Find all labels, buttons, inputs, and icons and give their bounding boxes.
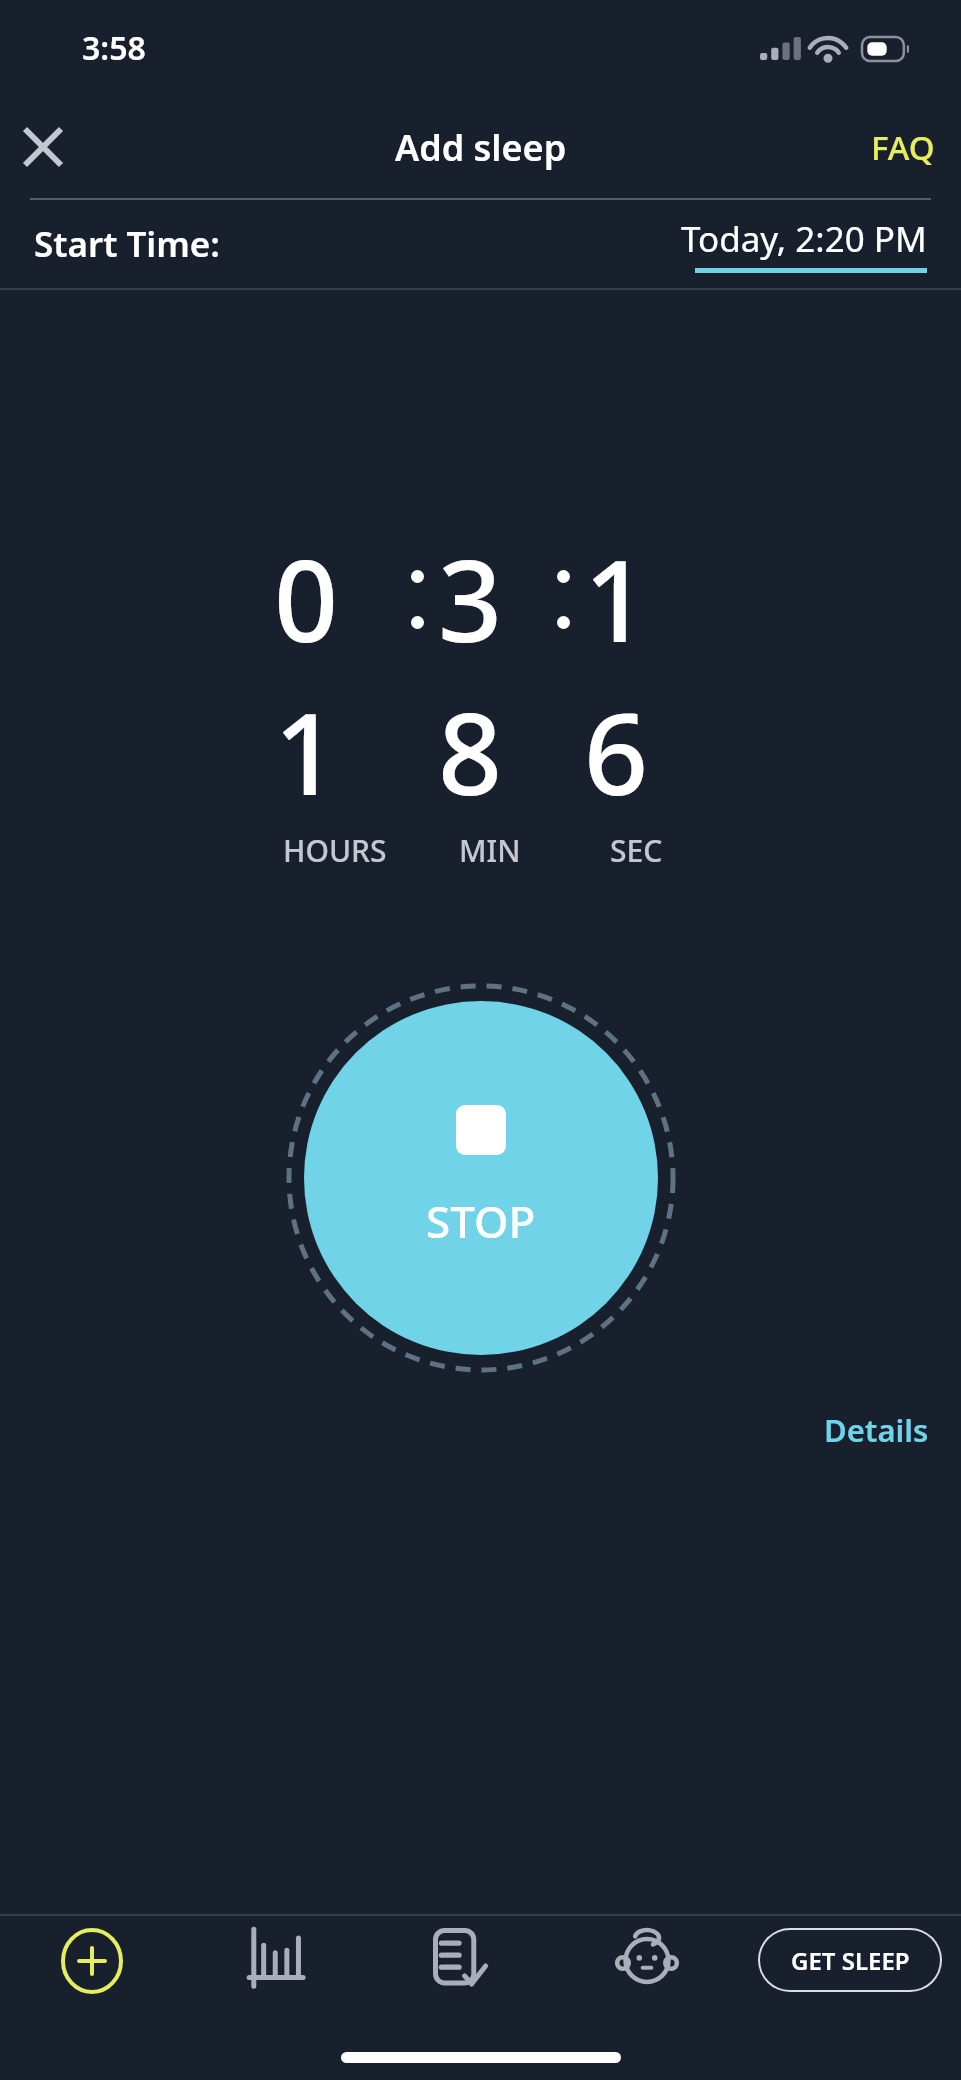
staticText: MIN <box>459 830 521 871</box>
staticText: STOP <box>426 1191 536 1251</box>
staticText: 3:58 <box>82 26 146 70</box>
staticText: SEC <box>610 830 663 871</box>
button[interactable]: STOP <box>304 1001 658 1355</box>
staticText: Start Time: <box>34 220 220 268</box>
staticText: HOURS <box>283 830 387 871</box>
staticText: Add sleep <box>395 123 567 172</box>
button[interactable]: Log <box>369 1928 554 2034</box>
staticText: Today, 2:20 PM <box>681 215 927 263</box>
staticText: 38 <box>438 522 542 828</box>
button[interactable]: Charts <box>184 1928 369 2034</box>
button[interactable]: FAQ <box>845 107 961 188</box>
staticText: GET SLEEP <box>791 1944 910 1977</box>
staticText: 01 <box>274 522 396 828</box>
button[interactable]: GET SLEEP <box>758 1928 942 1992</box>
staticText: 16 <box>584 522 688 828</box>
button[interactable]: Close <box>8 112 78 182</box>
button[interactable]: Add sleep <box>0 1928 184 2034</box>
button[interactable]: Start Time: <box>0 200 961 288</box>
button[interactable]: Details <box>792 1399 961 1461</box>
button[interactable]: Baby <box>554 1928 739 2034</box>
